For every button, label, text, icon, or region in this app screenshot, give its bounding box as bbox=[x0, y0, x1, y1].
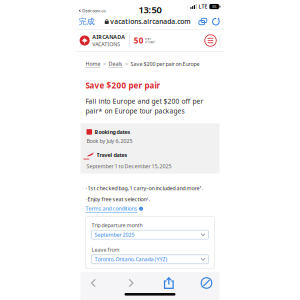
button[interactable]: Terms and conditions bbox=[85, 205, 143, 213]
button[interactable]: AIR CANADA bbox=[80, 33, 125, 48]
button[interactable]: 完成 bbox=[79, 16, 97, 27]
staticText: Save $200 per pair bbox=[85, 80, 160, 91]
staticText: Deals bbox=[108, 60, 122, 67]
staticText: AIR CANADA bbox=[92, 33, 125, 40]
staticText: Home bbox=[85, 60, 100, 67]
staticText: > bbox=[103, 60, 106, 68]
button[interactable]: Back bbox=[81, 276, 105, 290]
staticText: Fall into Europe and get $200 off per bbox=[85, 97, 203, 105]
staticText: Toronto, Ontario, Canada (YYZ) bbox=[94, 256, 167, 263]
button[interactable]: Home bbox=[85, 60, 100, 68]
staticText: 完成 bbox=[79, 17, 95, 26]
button[interactable]: Share bbox=[157, 276, 181, 290]
staticText: Terms and conditions bbox=[85, 205, 137, 212]
staticText: Trip departure month bbox=[91, 222, 142, 229]
staticText: Booking dates bbox=[95, 128, 131, 135]
staticText: 50 bbox=[134, 35, 144, 46]
staticText: > bbox=[125, 60, 128, 68]
button[interactable]: Menu bbox=[205, 35, 216, 46]
staticText: 13:50 bbox=[138, 3, 161, 16]
staticText: pair* on Europe tour packages bbox=[85, 106, 184, 115]
button[interactable]: Back to Dealroom.co bbox=[79, 8, 105, 13]
staticText: Travel dates bbox=[97, 151, 128, 159]
button[interactable]: Leave from bbox=[91, 246, 208, 264]
staticText: vacations.aircanada.com bbox=[110, 17, 190, 26]
staticText: · Enjoy free seat selection². bbox=[85, 196, 149, 203]
staticText: Save $200 per pair on Europe bbox=[130, 60, 199, 68]
staticText: of travel bbox=[145, 40, 156, 44]
staticText: LTE bbox=[199, 3, 208, 10]
staticText: Leave from bbox=[91, 246, 119, 253]
staticText: · 1st checked bag, 1 carry-on included a… bbox=[85, 185, 202, 192]
staticText: Dealroom.co bbox=[82, 8, 105, 13]
button[interactable]: Forward bbox=[119, 276, 143, 290]
staticText: 65 bbox=[212, 4, 216, 9]
staticText: September 1 to December 15, 2025 bbox=[86, 163, 171, 170]
button[interactable]: Reload bbox=[211, 16, 220, 27]
button[interactable]: Reader view bbox=[194, 276, 218, 290]
staticText: Book by July 6, 2025 bbox=[86, 137, 132, 144]
button[interactable]: Deals bbox=[108, 60, 122, 68]
button[interactable]: vacations.aircanada.com bbox=[105, 16, 190, 27]
button[interactable]: Tabs bbox=[198, 16, 207, 27]
staticText: September 2025 bbox=[94, 231, 134, 238]
button[interactable]: Trip departure month bbox=[91, 222, 208, 239]
staticText: VACATIONS bbox=[92, 41, 120, 48]
staticText: Years bbox=[145, 37, 151, 40]
